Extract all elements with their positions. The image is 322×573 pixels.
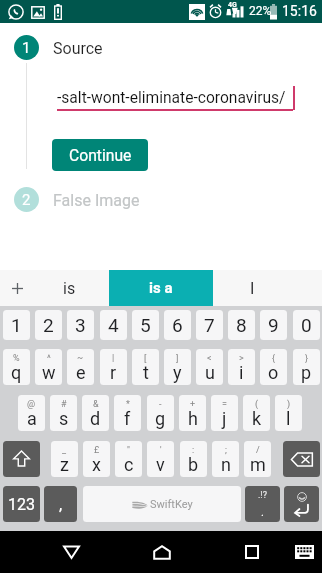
button[interactable]: %: [3, 349, 30, 385]
staticText: ^: [47, 353, 51, 364]
staticText: m: [250, 454, 266, 475]
button[interactable]: Continue: [52, 139, 148, 171]
button[interactable]: 0: [293, 310, 320, 340]
button[interactable]: :: [180, 441, 207, 477]
staticText: ): [287, 399, 291, 410]
button[interactable]: 5: [132, 310, 159, 340]
button[interactable]: ': [147, 441, 174, 477]
button[interactable]: (: [243, 395, 270, 431]
staticText: @: [27, 399, 36, 410]
staticText: r: [110, 362, 117, 383]
staticText: +: [190, 399, 196, 410]
button[interactable]: =: [211, 395, 238, 431]
button[interactable]: Recent apps: [231, 531, 272, 573]
staticText: p: [301, 362, 312, 383]
staticText: 5: [140, 314, 151, 336]
staticText: b: [188, 454, 199, 475]
staticText: i: [239, 362, 244, 383]
button[interactable]: [: [132, 349, 159, 385]
button[interactable]: 6: [164, 310, 191, 340]
button[interactable]: &: [82, 395, 109, 431]
button[interactable]: .!?: [245, 486, 280, 522]
button[interactable]: is a: [109, 270, 213, 306]
button[interactable]: ": [115, 441, 142, 477]
staticText: 22%: [249, 4, 272, 18]
button[interactable]: 7: [196, 310, 223, 340]
button[interactable]: I: [213, 270, 292, 306]
button[interactable]: /: [244, 441, 271, 477]
staticText: 15:16: [282, 3, 317, 19]
staticText: £: [94, 445, 100, 456]
button[interactable]: ^: [35, 349, 62, 385]
staticText: s: [59, 408, 69, 429]
staticText: q: [11, 362, 22, 383]
button[interactable]: @: [18, 395, 45, 431]
staticText: 0: [301, 314, 312, 336]
staticText: 8: [236, 314, 247, 336]
staticText: SwiftKey: [150, 498, 193, 511]
button[interactable]: -: [147, 395, 174, 431]
staticText: 7: [204, 314, 215, 336]
button[interactable]: <: [196, 349, 223, 385]
button[interactable]: ~: [67, 349, 94, 385]
staticText: 2: [22, 191, 31, 209]
button[interactable]: 1: [3, 310, 30, 340]
staticText: #: [61, 399, 67, 410]
button[interactable]: Space: [83, 486, 241, 522]
staticText: d: [90, 408, 101, 429]
button[interactable]: >: [228, 349, 255, 385]
button[interactable]: *: [114, 395, 141, 431]
button[interactable]: Back: [51, 531, 92, 573]
staticText: h: [188, 408, 198, 429]
staticText: ,: [59, 495, 63, 514]
button[interactable]: ]: [164, 349, 191, 385]
button[interactable]: Switch keyboard: [286, 531, 322, 573]
button[interactable]: 9: [260, 310, 287, 340]
staticText: .!?: [258, 490, 267, 501]
staticText: j: [222, 408, 227, 429]
staticText: n: [221, 454, 231, 475]
button[interactable]: +: [179, 395, 206, 431]
staticText: I: [250, 279, 255, 298]
staticText: z: [60, 454, 69, 475]
staticText: o: [268, 362, 279, 383]
button[interactable]: 8: [228, 310, 255, 340]
button[interactable]: 3: [67, 310, 94, 340]
staticText: ': [160, 445, 162, 456]
button[interactable]: Backspace: [283, 441, 320, 477]
staticText: .: [261, 506, 264, 519]
button[interactable]: Add word: [0, 270, 34, 306]
staticText: f: [124, 408, 131, 429]
staticText: }: [305, 353, 309, 364]
button[interactable]: }: [293, 349, 320, 385]
button[interactable]: _: [51, 441, 78, 477]
button[interactable]: 2: [35, 310, 62, 340]
staticText: False Image: [53, 191, 140, 210]
staticText: t: [143, 362, 149, 383]
staticText: <: [207, 353, 212, 364]
staticText: e: [76, 362, 86, 383]
button[interactable]: |: [100, 349, 127, 385]
button[interactable]: 4: [100, 310, 127, 340]
staticText: >: [239, 353, 244, 364]
staticText: Continue: [69, 146, 132, 164]
button[interactable]: Home: [141, 531, 182, 573]
staticText: is a: [149, 279, 173, 297]
staticText: x: [92, 454, 101, 475]
button[interactable]: ,: [44, 486, 77, 522]
staticText: 9: [268, 314, 279, 336]
button[interactable]: {: [260, 349, 287, 385]
button[interactable]: 123: [3, 486, 40, 522]
button[interactable]: is: [34, 270, 104, 306]
staticText: l: [286, 408, 291, 429]
button[interactable]: Enter: [284, 486, 319, 522]
button[interactable]: ;: [212, 441, 239, 477]
staticText: ~: [77, 353, 84, 364]
staticText: |: [112, 353, 115, 364]
staticText: (: [255, 399, 259, 410]
button[interactable]: £: [83, 441, 110, 477]
button[interactable]: Shift: [3, 441, 40, 477]
button[interactable]: ): [275, 395, 302, 431]
button[interactable]: #: [50, 395, 77, 431]
staticText: 4: [108, 314, 119, 336]
